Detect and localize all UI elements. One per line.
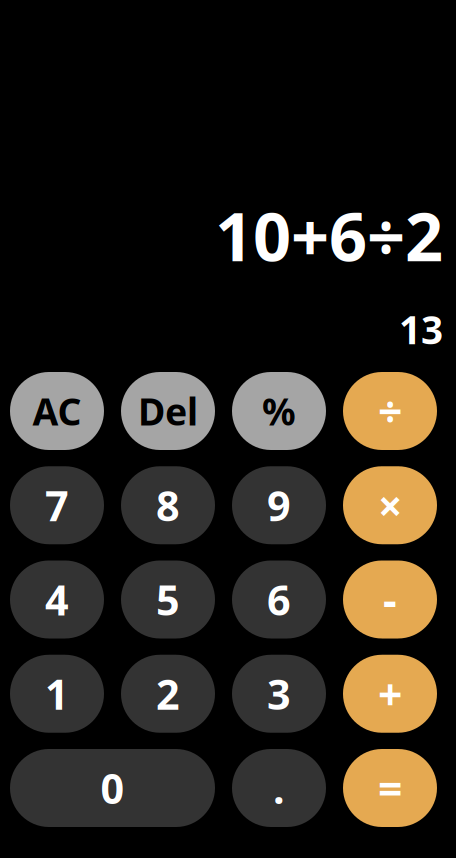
button[interactable]: 3	[232, 655, 326, 733]
staticText: 1	[45, 666, 69, 721]
staticText: Del	[138, 386, 198, 436]
staticText: 5	[156, 572, 180, 627]
staticText: ÷	[378, 383, 402, 439]
staticText: 13	[399, 303, 443, 355]
staticText: 6	[267, 572, 291, 627]
staticText: 4	[45, 572, 69, 627]
staticText: 9	[267, 478, 291, 533]
button[interactable]: 9	[232, 466, 326, 544]
staticText: 2	[156, 666, 180, 721]
staticText: 8	[156, 478, 180, 533]
button[interactable]: 6	[232, 560, 326, 638]
button[interactable]: =	[343, 749, 437, 827]
button[interactable]: ×	[343, 466, 437, 544]
staticText: %	[262, 386, 296, 436]
button[interactable]: -	[343, 560, 437, 638]
staticText: =	[378, 760, 402, 816]
button[interactable]: 2	[121, 655, 215, 733]
staticText: -	[383, 571, 397, 628]
button[interactable]: %	[232, 372, 326, 450]
button[interactable]: Del	[121, 372, 215, 450]
staticText: 10+6÷2	[215, 191, 443, 279]
button[interactable]: 4	[10, 560, 104, 638]
staticText: +	[378, 665, 402, 722]
button[interactable]: +	[343, 655, 437, 733]
button[interactable]: 0	[10, 749, 215, 827]
button[interactable]: AC	[10, 372, 104, 450]
button[interactable]: 1	[10, 655, 104, 733]
button[interactable]: .	[232, 749, 326, 827]
button[interactable]: 5	[121, 560, 215, 638]
button[interactable]: 8	[121, 466, 215, 544]
button[interactable]: 7	[10, 466, 104, 544]
staticText: 0	[100, 761, 124, 815]
staticText: 3	[267, 666, 291, 721]
staticText: 7	[45, 478, 69, 533]
staticText: AC	[32, 386, 81, 436]
staticText: ×	[378, 477, 402, 534]
staticText: .	[273, 761, 285, 815]
button[interactable]: ÷	[343, 372, 437, 450]
